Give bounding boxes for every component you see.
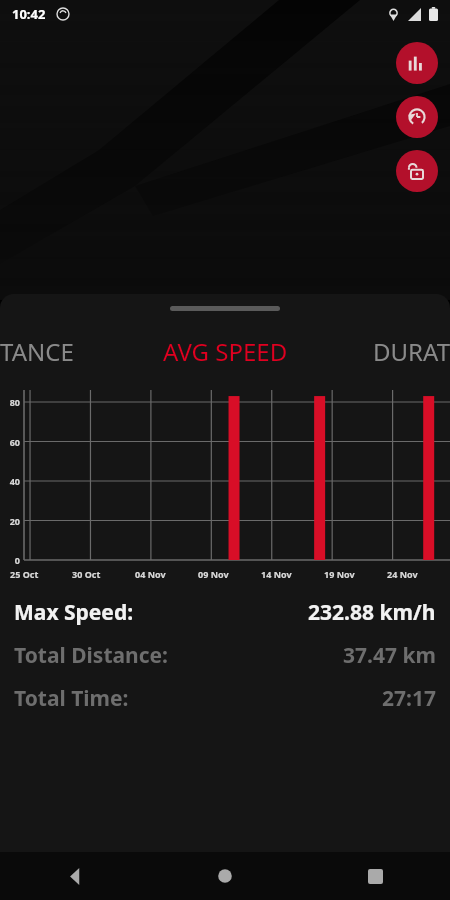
staticText: 14 Nov [261, 568, 292, 580]
button[interactable] [170, 306, 280, 311]
button[interactable]: Statistics [396, 42, 438, 84]
staticText: 20 [0, 515, 20, 527]
staticText: 40 [0, 475, 20, 487]
staticText: 09 Nov [198, 568, 229, 580]
staticText: 27:17 [382, 684, 436, 713]
button[interactable]: TANCE [0, 335, 74, 368]
staticText: 10:42 [12, 5, 46, 23]
staticText: 19 Nov [324, 568, 355, 580]
staticText: 30 Oct [72, 568, 101, 580]
button[interactable]: Lock screen [396, 150, 438, 192]
staticText: 24 Nov [387, 568, 418, 580]
button[interactable]: Home [150, 852, 300, 900]
button[interactable]: Max Speed: [14, 598, 436, 627]
staticText: 232.88 km/h [308, 598, 436, 627]
staticText: Total Distance: [14, 641, 168, 670]
staticText: 37.47 km [343, 641, 436, 670]
button[interactable]: Back [0, 852, 150, 900]
staticText: 04 Nov [135, 568, 166, 580]
staticText: 25 Oct [10, 568, 39, 580]
staticText: 80 [0, 396, 20, 408]
staticText: Max Speed: [14, 598, 134, 627]
staticText: Total Time: [14, 684, 129, 713]
staticText: 60 [0, 436, 20, 448]
staticText: 0 [0, 554, 20, 566]
button[interactable]: History [396, 96, 438, 138]
button[interactable]: AVG SPEED [163, 335, 288, 368]
button[interactable]: Total Time: [14, 684, 436, 713]
button[interactable]: Recent apps [300, 852, 450, 900]
button[interactable]: DURAT [373, 335, 450, 368]
button[interactable]: Total Distance: [14, 641, 436, 670]
